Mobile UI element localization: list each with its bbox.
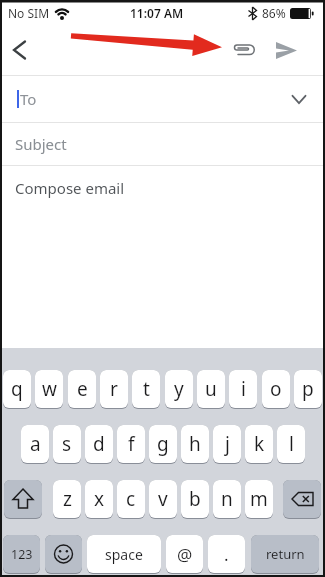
staticText: v [158, 486, 168, 512]
button[interactable]: Compose email [0, 166, 325, 210]
button[interactable]: w [35, 370, 63, 408]
staticText: . [224, 543, 229, 566]
button[interactable]: b [181, 480, 209, 518]
button[interactable]: d [85, 425, 113, 463]
staticText: No SIM [8, 5, 50, 21]
button[interactable]: m [245, 480, 273, 518]
button[interactable]: . [208, 535, 245, 573]
button[interactable]: 123 [3, 535, 40, 573]
staticText: k [254, 431, 265, 457]
button[interactable]: Subject [0, 123, 325, 165]
staticText: Compose email [15, 178, 125, 198]
staticText: 11:07 AM [130, 5, 184, 21]
staticText: u [205, 376, 217, 402]
staticText: 123 [11, 546, 33, 563]
staticText: space [105, 545, 143, 564]
staticText: c [126, 486, 136, 512]
staticText: w [42, 376, 57, 402]
staticText: x [94, 486, 105, 512]
button[interactable]: f [117, 425, 145, 463]
button[interactable]: u [197, 370, 225, 408]
button[interactable] [273, 37, 299, 63]
button[interactable]: @ [166, 535, 203, 573]
button[interactable]: q [3, 370, 31, 408]
staticText: o [270, 376, 282, 402]
staticText: l [289, 431, 294, 457]
button[interactable] [6, 37, 32, 63]
button[interactable]: return [251, 535, 319, 573]
staticText: p [302, 376, 314, 402]
staticText: a [30, 431, 41, 457]
button[interactable]: i [229, 370, 257, 408]
staticText: s [62, 431, 72, 457]
button[interactable]: t [132, 370, 160, 408]
button[interactable]: j [213, 425, 241, 463]
button[interactable]: z [53, 480, 81, 518]
staticText: return [266, 545, 305, 563]
button[interactable]: v [149, 480, 177, 518]
staticText: j [225, 431, 230, 457]
staticText: m [250, 486, 268, 512]
staticText: @ [177, 543, 193, 566]
staticText: g [157, 431, 169, 457]
staticText: z [63, 486, 72, 512]
button[interactable]: To [0, 76, 325, 122]
staticText: 86% [262, 5, 286, 21]
button[interactable]: x [85, 480, 113, 518]
button[interactable]: p [294, 370, 322, 408]
button[interactable]: a [21, 425, 49, 463]
button[interactable]: l [277, 425, 305, 463]
button[interactable]: h [181, 425, 209, 463]
button[interactable]: space [87, 535, 161, 573]
staticText: i [241, 376, 246, 402]
button[interactable] [231, 37, 257, 63]
staticText: b [189, 486, 201, 512]
staticText: e [77, 376, 88, 402]
staticText: d [93, 431, 105, 457]
staticText: q [11, 376, 23, 402]
staticText: n [221, 486, 233, 512]
staticText: h [189, 431, 201, 457]
button[interactable]: g [149, 425, 177, 463]
button[interactable] [283, 480, 321, 518]
button[interactable]: e [68, 370, 96, 408]
button[interactable]: s [53, 425, 81, 463]
staticText: r [110, 376, 118, 402]
button[interactable] [45, 535, 82, 573]
staticText: y [174, 376, 184, 402]
button[interactable]: y [165, 370, 193, 408]
button[interactable]: n [213, 480, 241, 518]
staticText: Subject [15, 134, 67, 154]
button[interactable]: o [262, 370, 290, 408]
button[interactable]: c [117, 480, 145, 518]
button[interactable]: r [100, 370, 128, 408]
staticText: To [20, 89, 37, 109]
staticText: t [143, 376, 150, 402]
button[interactable] [4, 480, 42, 518]
button[interactable]: k [245, 425, 273, 463]
staticText: f [128, 431, 135, 457]
